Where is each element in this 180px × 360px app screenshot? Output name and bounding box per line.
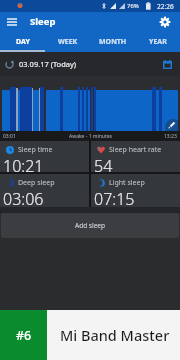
staticText: 03:01: [3, 133, 16, 140]
staticText: Sleep: [30, 15, 56, 28]
staticText: 54: [94, 155, 113, 172]
button[interactable]: YEAR: [135, 31, 180, 52]
staticText: #6: [16, 327, 32, 344]
staticText: Sleep time: [18, 145, 53, 155]
staticText: 07:15: [94, 188, 135, 207]
button[interactable]: WEEK: [45, 31, 90, 52]
staticText: Sleep heart rate: [109, 145, 162, 155]
button[interactable]: Add sleep: [1, 213, 179, 238]
button[interactable]: Sleep time: [0, 141, 89, 172]
staticText: Mi Band Master: [60, 325, 170, 345]
staticText: Light sleep: [109, 178, 145, 188]
button[interactable]: Sleep heart rate: [91, 141, 180, 172]
staticText: YEAR: [149, 37, 167, 47]
button[interactable]: Light sleep: [91, 174, 180, 207]
staticText: WEEK: [58, 37, 78, 47]
staticText: 10:21: [3, 155, 44, 172]
button[interactable]: [159, 16, 171, 28]
button[interactable]: MONTH: [90, 31, 135, 52]
staticText: Awake - 1 minutes: [69, 133, 112, 140]
button[interactable]: [163, 60, 172, 69]
staticText: MONTH: [99, 37, 127, 47]
staticText: 22:26: [157, 2, 174, 11]
button[interactable]: [5, 15, 19, 29]
button[interactable]: DAY: [0, 31, 45, 52]
button[interactable]: Deep sleep: [0, 174, 89, 207]
button[interactable]: 03.09.17 (Today): [5, 59, 77, 69]
staticText: 03:06: [3, 188, 44, 207]
staticText: Deep sleep: [18, 178, 55, 188]
staticText: 76%: [127, 2, 139, 10]
staticText: 13:23: [164, 133, 177, 140]
staticText: Add sleep: [75, 221, 105, 230]
staticText: DAY: [16, 37, 30, 47]
staticText: 03.09.17 (Today): [19, 59, 77, 69]
